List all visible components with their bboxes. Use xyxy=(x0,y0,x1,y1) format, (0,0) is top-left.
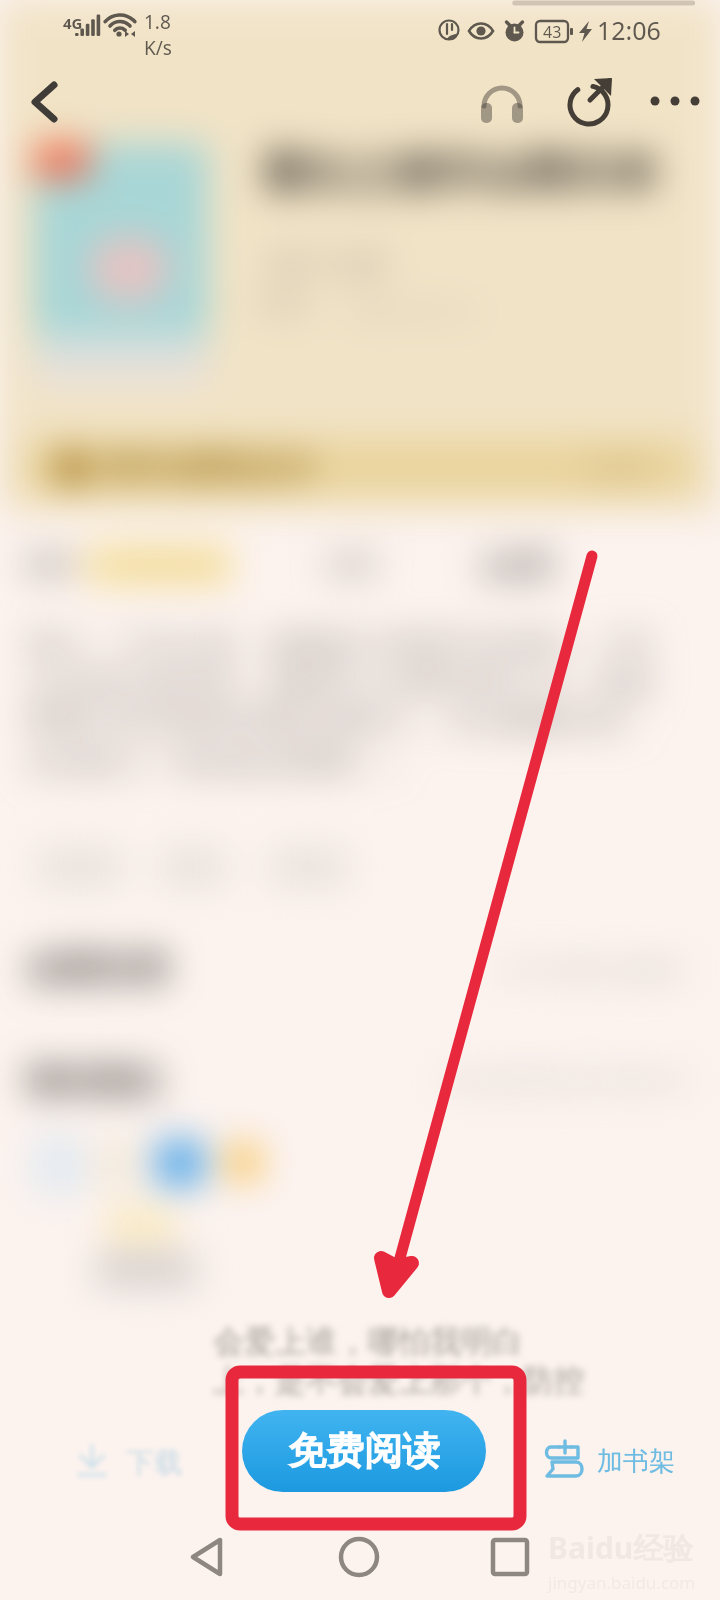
staticText: 全部目录 xyxy=(26,946,170,991)
staticText: 猜你喜欢 xyxy=(26,1060,162,1103)
staticText: 下载 xyxy=(126,1445,182,1480)
button[interactable]: Recents xyxy=(470,1517,550,1597)
staticText: 誓要让所有曾经轻视过他的人，付出惨痛代价， xyxy=(26,702,656,740)
staticText: 上，是不会爱上那个，防控 xyxy=(213,1361,585,1400)
staticText: 之后他王者归来，身携无上仙尊传承之力，他发 xyxy=(26,664,656,702)
staticText: K/s xyxy=(144,35,172,61)
button[interactable]: Back xyxy=(167,1517,247,1597)
button[interactable]: 免费阅读 xyxy=(242,1410,486,1492)
button[interactable]: Listen xyxy=(472,70,532,130)
staticText: 43 xyxy=(543,21,562,43)
staticText: 2.8万 xyxy=(481,545,554,586)
staticText: 免费阅读 xyxy=(288,1427,440,1475)
staticText: jingyan.baidu.com xyxy=(548,1571,696,1594)
button[interactable]: 下载 xyxy=(74,1438,182,1486)
staticText: 简介：三年之前，他被逼入绝境万念俱灰，三年 xyxy=(26,626,656,664)
staticText: 重生之都市仙尊归来 xyxy=(262,146,658,201)
staticText: 4G xyxy=(63,13,83,33)
staticText: 12:06 xyxy=(597,13,661,47)
staticText: 1008章完结 xyxy=(92,548,225,582)
staticText: 会爱上谁，哪怕我明白 xyxy=(213,1322,523,1361)
staticText: 加书架 xyxy=(597,1445,675,1478)
staticText: 最新 xyxy=(24,548,78,582)
staticText: 1.8 xyxy=(144,9,171,35)
staticText: 为你推荐更多好看的书 xyxy=(440,1066,690,1097)
button[interactable]: 加书架 xyxy=(544,1437,675,1485)
staticText: Baidu经验 xyxy=(548,1527,694,1568)
staticText: 限时免费读全本 xyxy=(104,449,314,487)
button[interactable]: More options xyxy=(645,70,705,130)
staticText: 从此踏上一条热血逆袭路…… xyxy=(26,740,404,781)
button[interactable]: Home xyxy=(319,1517,399,1597)
button[interactable]: Share xyxy=(560,70,620,130)
button[interactable]: Back xyxy=(10,62,84,136)
